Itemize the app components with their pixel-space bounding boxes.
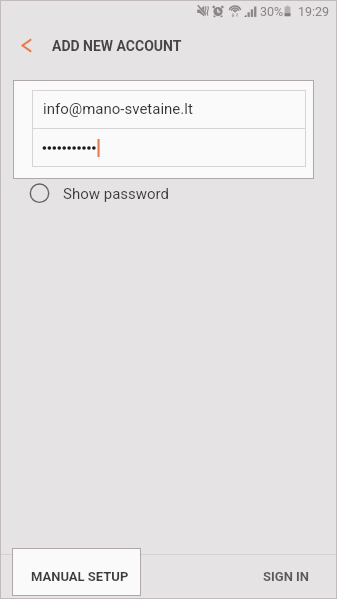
staticText: Show password xyxy=(63,185,170,203)
staticText: 19:29 xyxy=(298,4,330,19)
button[interactable]: MANUAL SETUP xyxy=(12,548,141,596)
staticText: MANUAL SETUP xyxy=(31,569,129,584)
staticText: ADD NEW ACCOUNT xyxy=(52,38,182,54)
button[interactable]: Navigate up xyxy=(11,30,42,61)
button[interactable] xyxy=(32,129,306,167)
button[interactable]: info@mano-svetaine.lt xyxy=(32,90,306,128)
staticText: 30% xyxy=(260,4,284,19)
button[interactable]: Show password xyxy=(30,181,170,205)
button[interactable]: SIGN IN xyxy=(218,548,337,596)
staticText: SIGN IN xyxy=(263,569,310,584)
staticText: info@mano-svetaine.lt xyxy=(43,100,193,118)
